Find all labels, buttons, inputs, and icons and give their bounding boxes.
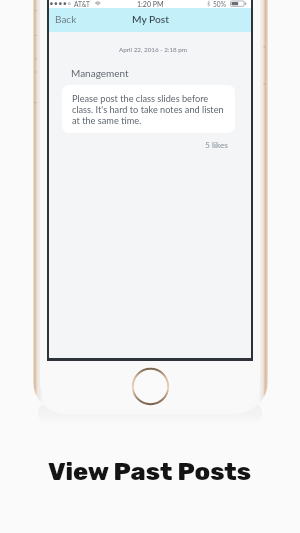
staticText: My Post <box>132 13 169 25</box>
staticText: April 22, 2016 - 2:18 pm <box>52 46 254 54</box>
staticText: AT&T <box>74 0 90 8</box>
staticText: Back <box>55 13 77 25</box>
staticText: Management <box>71 67 129 79</box>
button[interactable]: Home <box>131 367 170 406</box>
staticText: Please post the class slides before clas… <box>72 93 224 126</box>
button[interactable]: Back <box>49 9 85 29</box>
staticText: 5 likes <box>49 140 228 150</box>
staticText: 50% <box>213 0 226 8</box>
staticText: View Past Posts <box>48 457 252 487</box>
staticText: 1:20 PM <box>137 0 164 8</box>
